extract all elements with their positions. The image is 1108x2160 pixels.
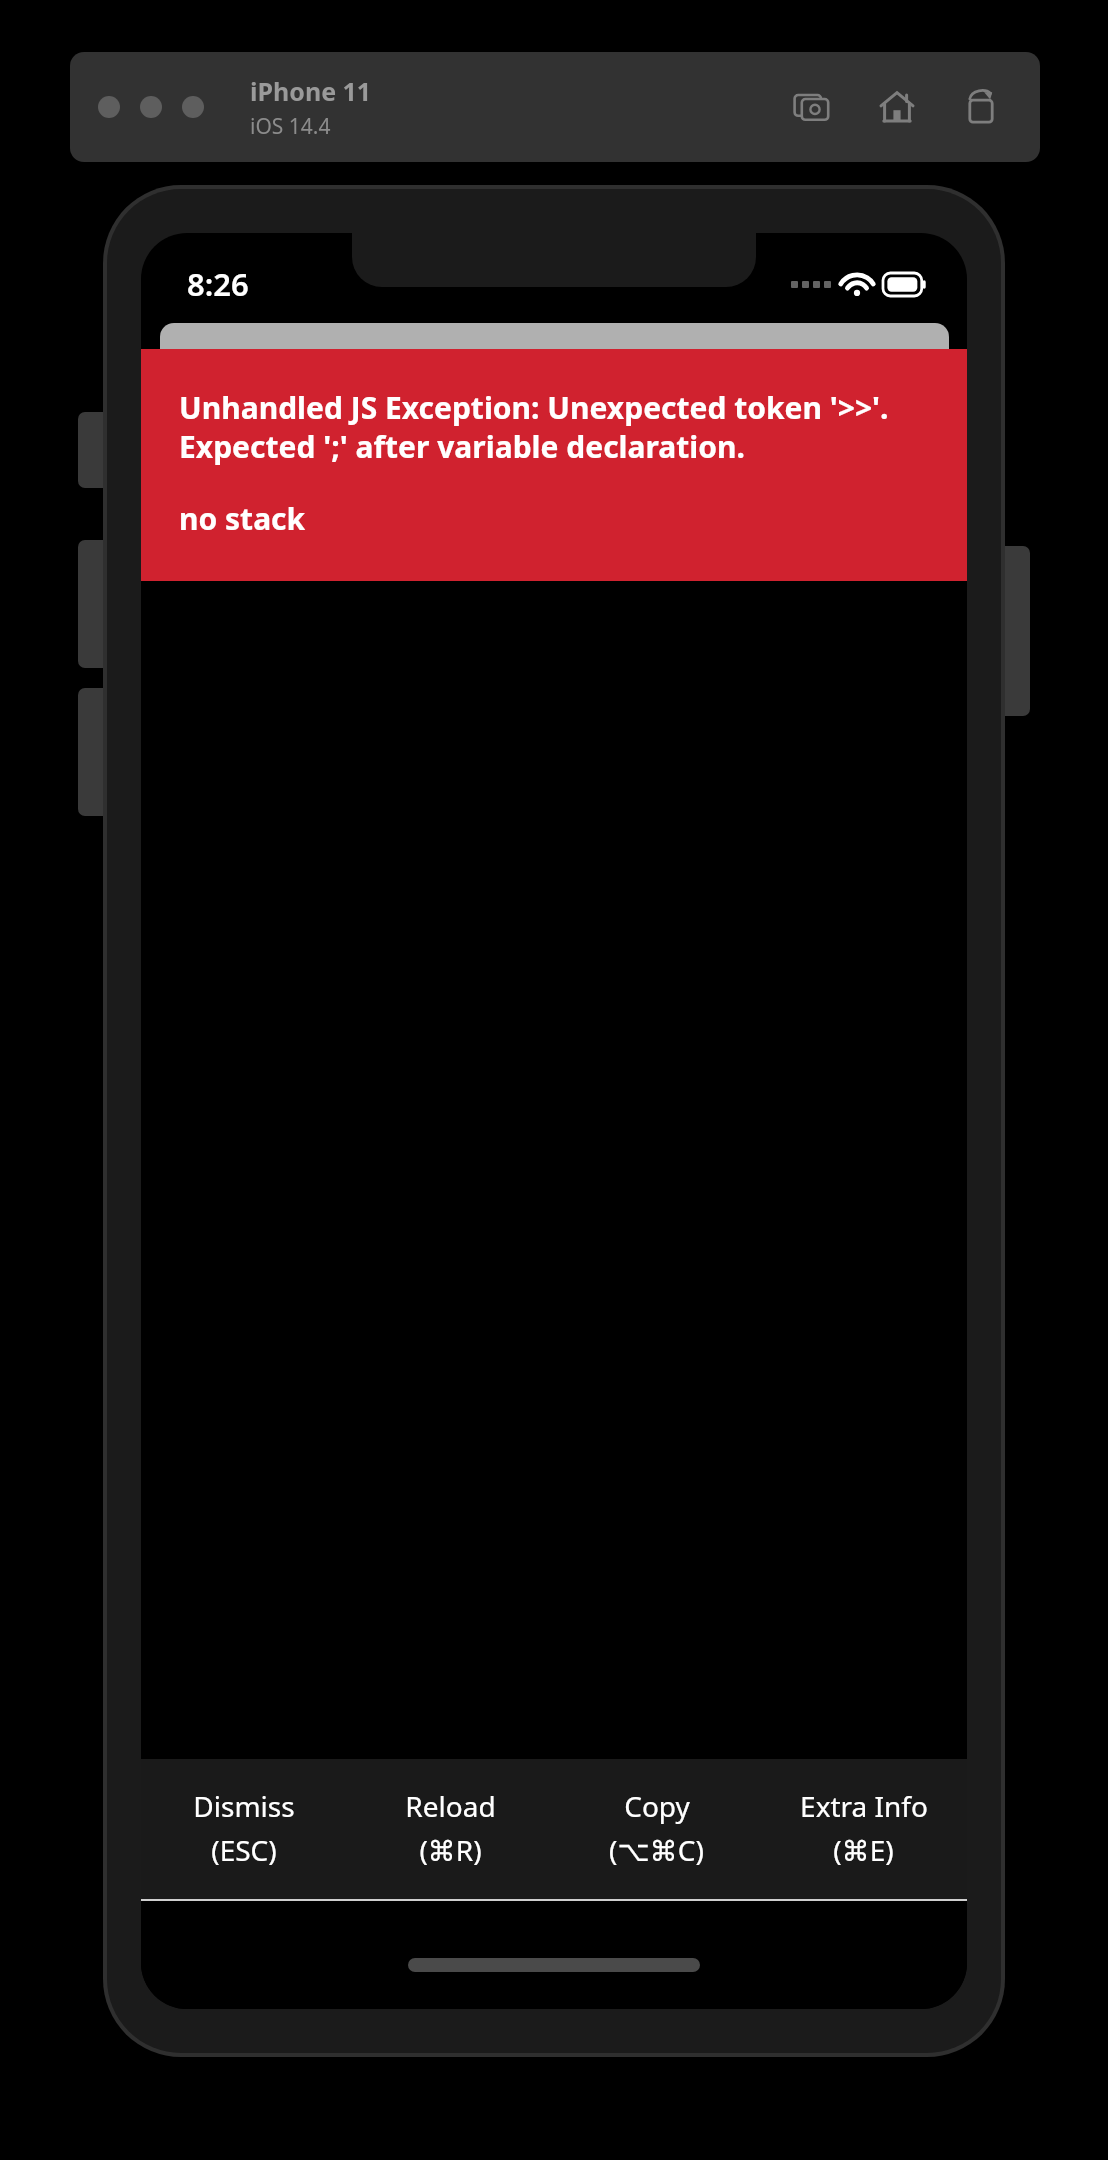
button[interactable]: [182, 96, 204, 118]
staticText: no stack: [179, 498, 306, 539]
staticText: 8:26: [187, 263, 249, 305]
staticText: iPhone 11: [250, 74, 372, 108]
button[interactable]: [140, 96, 162, 118]
button[interactable]: Rotate device: [958, 84, 1004, 130]
button[interactable]: Unhandled JS Exception: Unexpected token…: [141, 349, 967, 581]
staticText: (⌘R): [419, 1831, 482, 1869]
button[interactable]: Home: [874, 84, 920, 130]
staticText: iOS 14.4: [250, 112, 331, 141]
staticText: (ESC): [211, 1831, 277, 1869]
staticText: Dismiss: [193, 1787, 295, 1825]
button[interactable]: Dismiss: [141, 1759, 347, 1899]
staticText: Unhandled JS Exception: Unexpected token…: [179, 387, 937, 466]
button[interactable]: Reload: [347, 1759, 553, 1899]
button[interactable]: Screenshot: [790, 84, 836, 130]
staticText: (⌥⌘C): [609, 1831, 704, 1869]
staticText: (⌘E): [833, 1831, 894, 1869]
staticText: Copy: [624, 1787, 690, 1825]
button[interactable]: [98, 96, 120, 118]
button[interactable]: Extra Info: [760, 1759, 967, 1899]
staticText: Reload: [405, 1787, 496, 1825]
staticText: Extra Info: [800, 1787, 928, 1825]
button[interactable]: Copy: [553, 1759, 760, 1899]
